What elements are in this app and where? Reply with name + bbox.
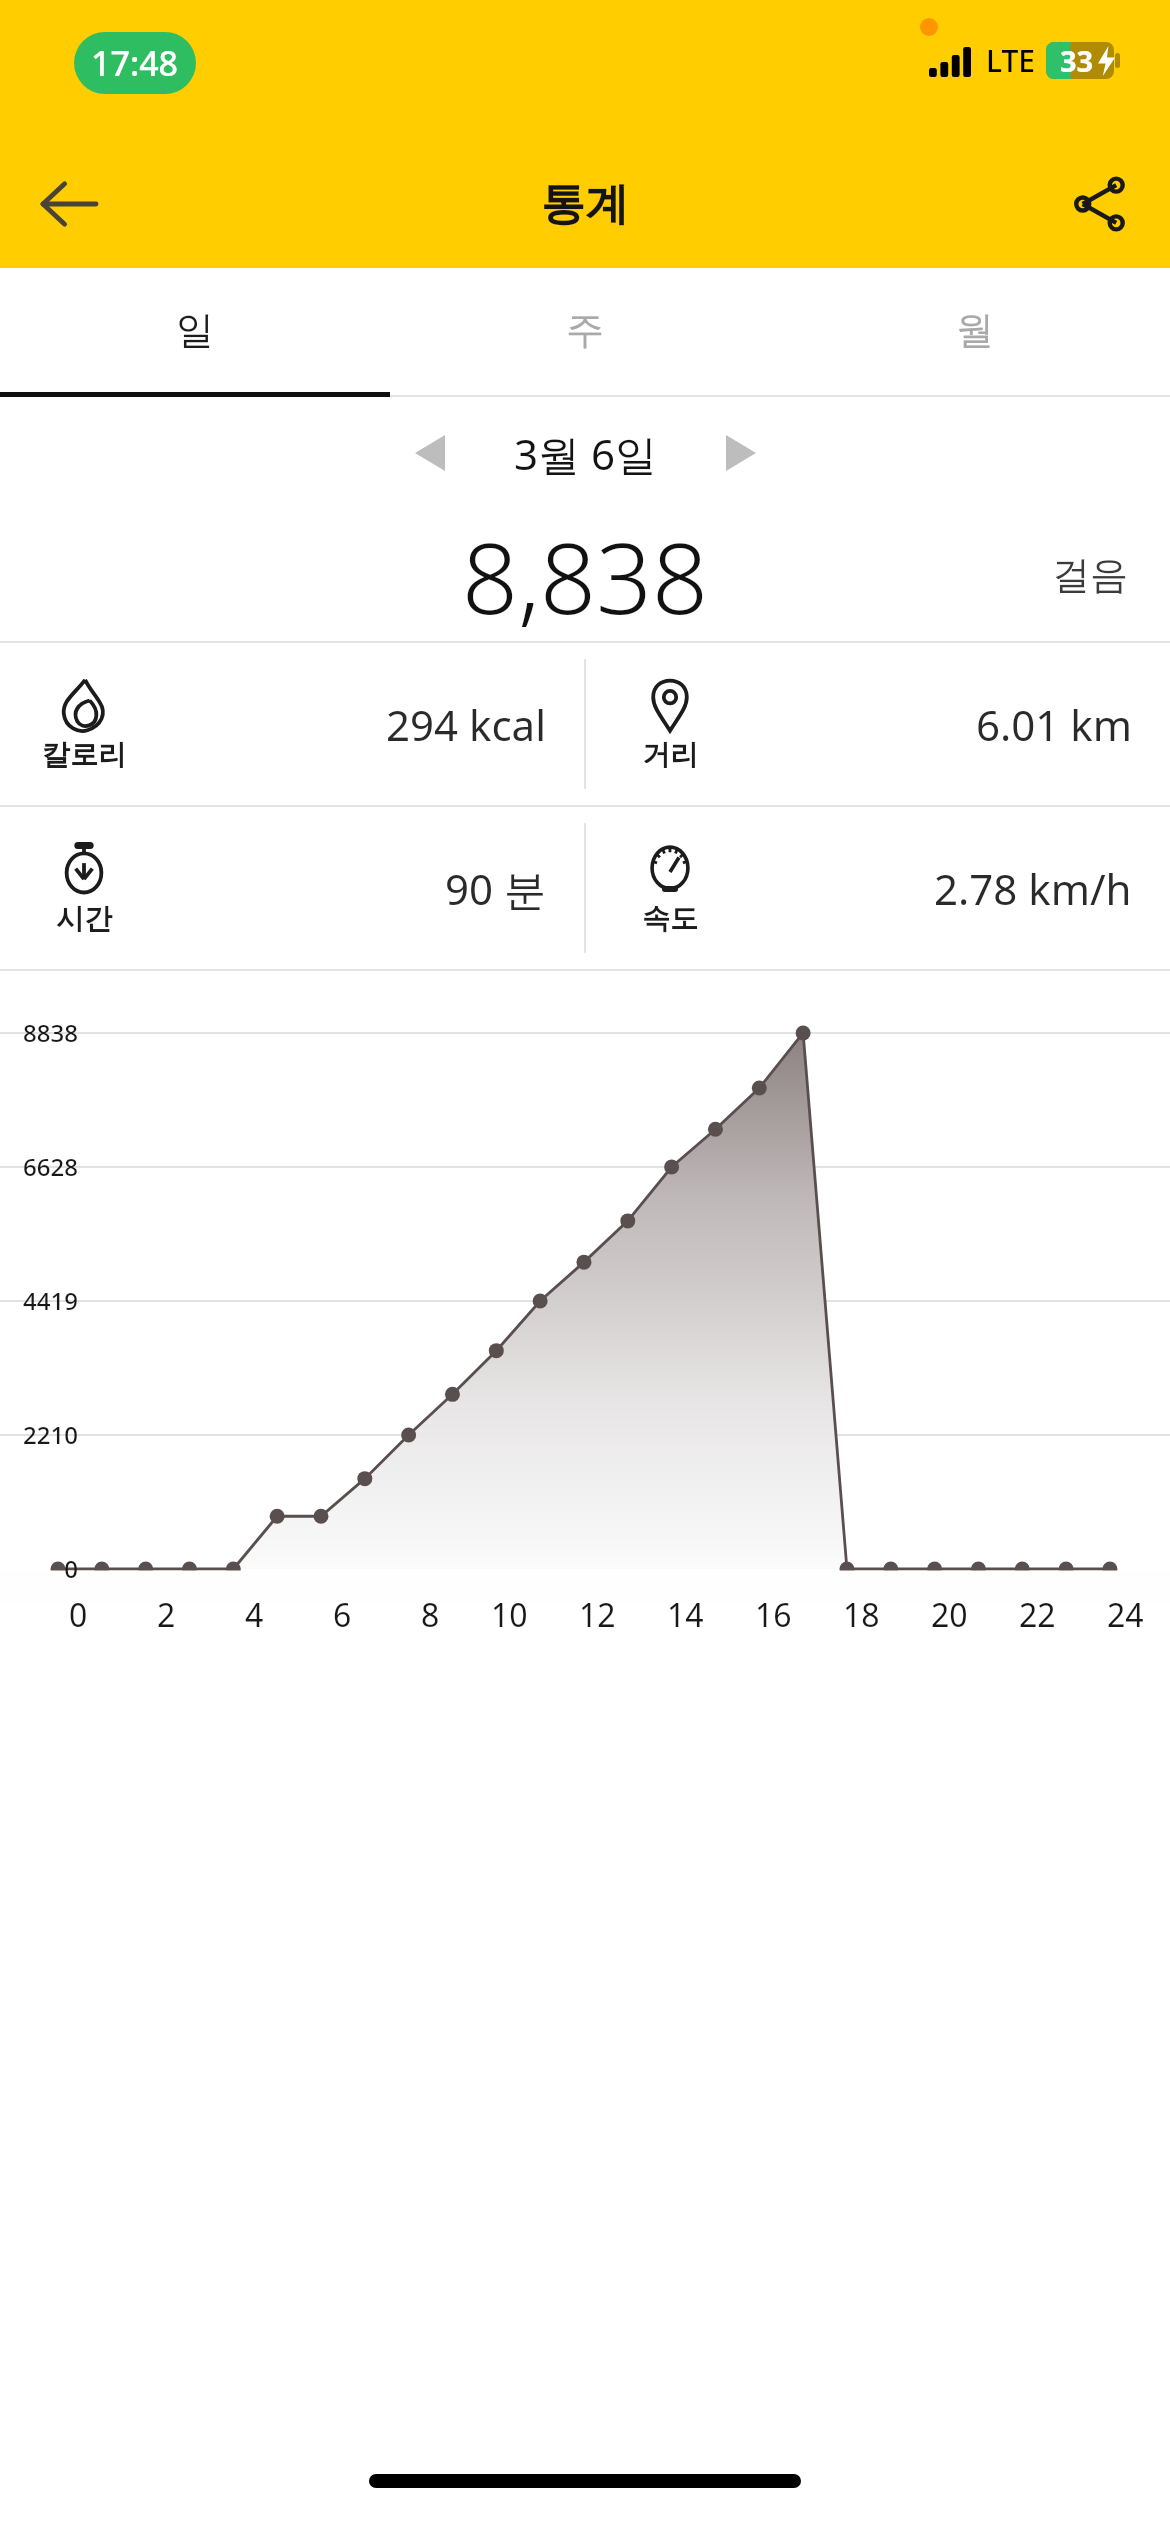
staticText: 12 <box>579 1593 616 1631</box>
button[interactable]: Previous day <box>392 415 468 491</box>
staticText: 294 kcal <box>386 696 546 753</box>
staticText: 0 <box>69 1593 88 1631</box>
staticText: 거리 <box>642 737 698 772</box>
staticText: 20 <box>931 1593 968 1631</box>
staticText: 8 <box>421 1593 440 1631</box>
staticText: 걸음 <box>1052 551 1128 599</box>
button[interactable]: 시간 <box>0 807 584 969</box>
button[interactable]: 속도 <box>586 807 1170 969</box>
button[interactable]: Next day <box>703 415 779 491</box>
staticText: 칼로리 <box>42 737 126 772</box>
staticText: 일 <box>176 306 214 354</box>
staticText: 8838 <box>0 1016 78 1049</box>
staticText: 2.78 km/h <box>934 860 1132 917</box>
staticText: 주 <box>566 306 604 354</box>
staticText: 4419 <box>0 1284 78 1317</box>
staticText: 17:48 <box>91 40 179 86</box>
staticText: 10 <box>491 1593 528 1631</box>
staticText: 8,838 <box>462 509 708 641</box>
staticText: 22 <box>1019 1593 1056 1631</box>
button[interactable]: 칼로리 <box>0 643 584 805</box>
button[interactable]: 월 <box>780 268 1170 392</box>
staticText: 2210 <box>0 1418 78 1451</box>
staticText: 4 <box>245 1593 264 1631</box>
staticText: 14 <box>667 1593 704 1631</box>
staticText: 6628 <box>0 1150 78 1183</box>
staticText: 월 <box>956 306 994 354</box>
staticText: LTE <box>986 40 1035 81</box>
button[interactable]: 주 <box>390 268 780 392</box>
staticText: 0 <box>0 1552 78 1585</box>
staticText: 3월 6일 <box>514 425 657 482</box>
button[interactable]: 거리 <box>586 643 1170 805</box>
staticText: 18 <box>843 1593 880 1631</box>
staticText: 시간 <box>56 901 112 936</box>
staticText: 속도 <box>642 901 698 936</box>
staticText: 통계 <box>541 177 629 232</box>
button[interactable]: Share <box>1050 154 1150 254</box>
staticText: 6 <box>333 1593 352 1631</box>
staticText: 6.01 km <box>976 696 1132 753</box>
staticText: 90 분 <box>445 860 546 917</box>
staticText: 2 <box>157 1593 176 1631</box>
button[interactable]: 일 <box>0 268 390 392</box>
staticText: 33 <box>1060 41 1094 80</box>
button[interactable]: Back <box>18 154 118 254</box>
staticText: 16 <box>755 1593 792 1631</box>
staticText: 24 <box>1107 1593 1144 1631</box>
